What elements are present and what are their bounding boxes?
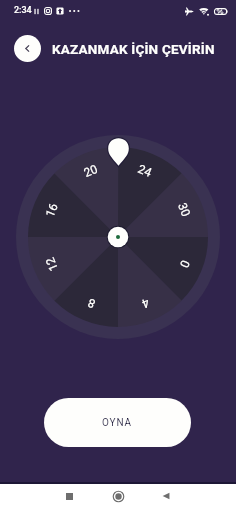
- staticText: 0: [177, 258, 192, 270]
- staticText: 20: [82, 162, 100, 180]
- button[interactable]: Back: [14, 35, 41, 62]
- staticText: KAZANMAK İÇİN ÇEVİRİN: [52, 41, 215, 57]
- button[interactable]: OYNA: [44, 398, 191, 447]
- staticText: 12: [43, 255, 61, 273]
- staticText: 24: [136, 162, 154, 180]
- button[interactable]: Back: [152, 482, 180, 510]
- staticText: OYNA: [102, 417, 133, 429]
- staticText: 30: [175, 201, 193, 219]
- staticText: 8: [86, 295, 97, 311]
- button[interactable]: Home: [104, 482, 132, 510]
- staticText: 4: [140, 295, 151, 311]
- staticText: 16: [43, 201, 61, 219]
- staticText: 2:34: [14, 5, 32, 16]
- button[interactable]: Recent apps: [55, 482, 83, 510]
